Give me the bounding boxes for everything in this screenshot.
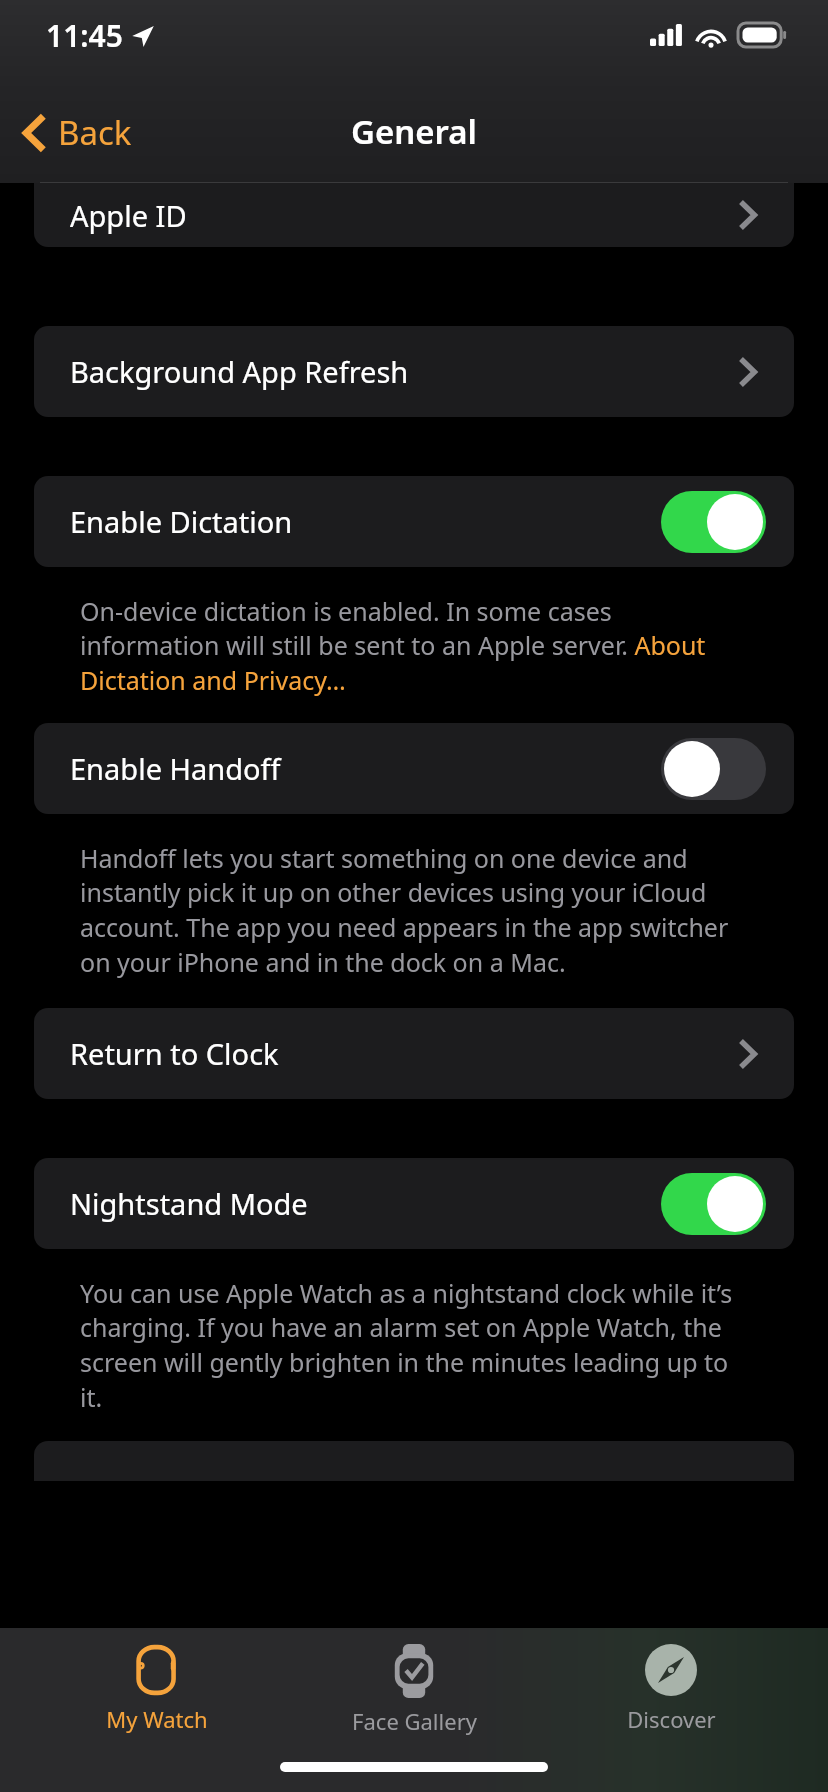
staticText: 11:45 xyxy=(46,15,123,56)
button[interactable]: Return to Clock xyxy=(34,1008,794,1099)
button[interactable]: Apple ID xyxy=(34,183,794,247)
button[interactable]: Enable Dictation xyxy=(34,476,794,567)
staticText: Face Gallery xyxy=(352,1706,477,1736)
staticText: Return to Clock xyxy=(70,1034,279,1073)
button[interactable]: My Watch xyxy=(57,1644,257,1734)
other: Open xyxy=(738,198,758,232)
staticText: You can use Apple Watch as a nightstand … xyxy=(80,1276,748,1415)
staticText: Enable Handoff xyxy=(70,749,281,788)
button[interactable]: Face Gallery xyxy=(314,1644,514,1736)
button[interactable]: Toggle off xyxy=(661,738,766,800)
staticText: Discover xyxy=(627,1704,716,1734)
staticText: Nightstand Mode xyxy=(70,1184,308,1223)
button[interactable]: Background App Refresh xyxy=(34,326,794,417)
staticText: My Watch xyxy=(106,1704,208,1734)
staticText: Back xyxy=(58,110,132,155)
staticText: On-device dictation is enabled. In some … xyxy=(80,594,748,698)
other: Face Gallery xyxy=(394,1644,434,1698)
button[interactable]: Nightstand Mode xyxy=(34,1158,794,1249)
button[interactable]: Toggle on xyxy=(661,491,766,553)
staticText: Apple ID xyxy=(70,196,187,235)
staticText: Enable Dictation xyxy=(70,502,293,541)
staticText: Handoff lets you start something on one … xyxy=(80,841,748,980)
other: My Watch xyxy=(134,1644,180,1696)
button[interactable]: Discover xyxy=(571,1644,771,1734)
button[interactable]: Toggle on xyxy=(661,1173,766,1235)
other: Open xyxy=(738,355,758,389)
button[interactable]: Enable Handoff xyxy=(34,723,794,814)
staticText: Background App Refresh xyxy=(70,352,409,391)
button[interactable]: Back xyxy=(22,110,132,155)
other: Open xyxy=(738,1037,758,1071)
staticText: General xyxy=(351,109,477,154)
other: Discover xyxy=(645,1644,697,1696)
